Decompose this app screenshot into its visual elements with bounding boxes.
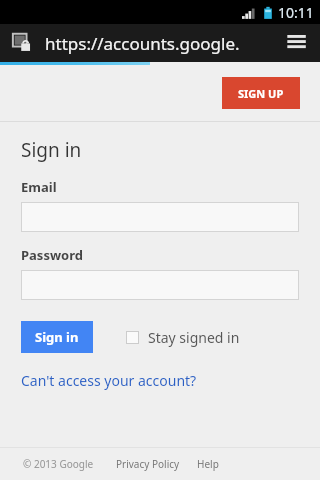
button[interactable]: Can't access your account? bbox=[21, 371, 197, 390]
button[interactable]: Privacy Policy bbox=[116, 457, 180, 471]
staticText: Privacy Policy bbox=[116, 457, 180, 471]
staticText: 10:11 bbox=[278, 3, 314, 22]
staticText: Help bbox=[197, 457, 219, 471]
staticText: Sign in bbox=[35, 328, 79, 346]
button[interactable]: https://accounts.google. bbox=[45, 32, 280, 55]
staticText: Stay signed in bbox=[148, 328, 240, 347]
staticText: Email bbox=[21, 178, 57, 196]
staticText: SIGN UP bbox=[238, 86, 284, 101]
staticText: Sign in bbox=[21, 137, 82, 163]
button[interactable] bbox=[21, 202, 299, 232]
staticText: © 2013 Google bbox=[23, 457, 94, 471]
button[interactable]: Stay signed in bbox=[126, 328, 240, 347]
button[interactable]: Sign in bbox=[21, 321, 93, 353]
staticText: https://accounts.google. bbox=[45, 32, 240, 55]
button[interactable]: Help bbox=[197, 457, 219, 471]
staticText: Password bbox=[21, 246, 83, 264]
button[interactable]: Page security info bbox=[12, 32, 34, 54]
button[interactable]: SIGN UP bbox=[222, 77, 300, 109]
staticText: Can't access your account? bbox=[21, 371, 197, 390]
button[interactable]: Tabs bbox=[284, 30, 310, 56]
button[interactable] bbox=[21, 270, 299, 300]
